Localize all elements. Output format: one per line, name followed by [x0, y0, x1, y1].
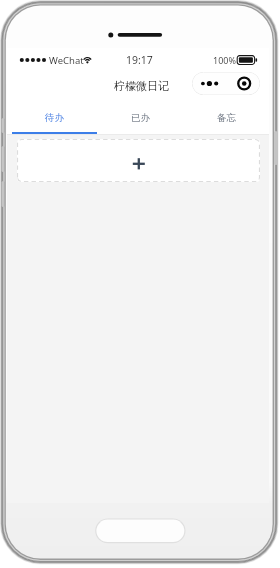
- staticText: 已办: [131, 112, 150, 124]
- button[interactable]: 备忘: [183, 100, 269, 134]
- staticText: 待办: [45, 112, 64, 124]
- button[interactable]: Add new item: [17, 139, 260, 182]
- staticText: WeChat: [49, 54, 84, 67]
- button[interactable]: 已办: [97, 100, 183, 134]
- staticText: 备忘: [217, 112, 236, 124]
- button[interactable]: More options: [192, 72, 260, 95]
- staticText: 19:17: [126, 53, 153, 67]
- staticText: 100%: [213, 54, 236, 66]
- staticText: 柠檬微日记: [114, 79, 169, 93]
- button[interactable]: 待办: [12, 100, 97, 134]
